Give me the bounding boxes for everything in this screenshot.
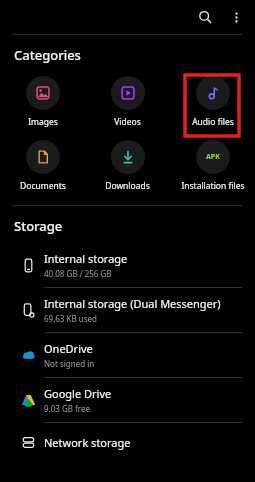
staticText: Categories <box>14 46 81 64</box>
staticText: Internal storage (Dual Messenger) <box>44 296 221 311</box>
staticText: Downloads <box>105 180 150 192</box>
button[interactable]: Downloads <box>85 140 170 192</box>
button[interactable]: Documents <box>0 140 85 192</box>
button[interactable]: Network storage <box>0 423 255 461</box>
button[interactable]: Images <box>0 76 85 128</box>
button[interactable]: OneDrive <box>0 333 255 377</box>
staticText: OneDrive <box>44 341 93 356</box>
button[interactable]: Audio files <box>170 76 255 128</box>
button[interactable]: Google Drive <box>0 378 255 422</box>
staticText: Storage <box>14 217 63 235</box>
staticText: 69.63 KB used <box>44 313 97 324</box>
staticText: Audio files <box>192 116 234 128</box>
button[interactable]: More options <box>223 4 249 30</box>
staticText: Google Drive <box>44 386 112 401</box>
button[interactable]: Videos <box>85 76 170 128</box>
staticText: APK <box>206 152 220 162</box>
staticText: Documents <box>20 180 66 192</box>
button[interactable]: Internal storage <box>0 243 255 287</box>
button[interactable]: APK <box>170 140 255 192</box>
staticText: Videos <box>114 116 141 128</box>
staticText: Not signed in <box>44 358 95 369</box>
button[interactable]: Search <box>192 4 218 30</box>
button[interactable]: Internal storage (Dual Messenger) <box>0 288 255 332</box>
staticText: Installation files <box>181 180 245 192</box>
staticText: Network storage <box>44 435 131 450</box>
staticText: Images <box>28 116 58 128</box>
staticText: 9.03 GB free <box>44 403 90 414</box>
staticText: 40.08 GB / 256 GB <box>44 268 112 279</box>
staticText: Internal storage <box>44 251 128 266</box>
